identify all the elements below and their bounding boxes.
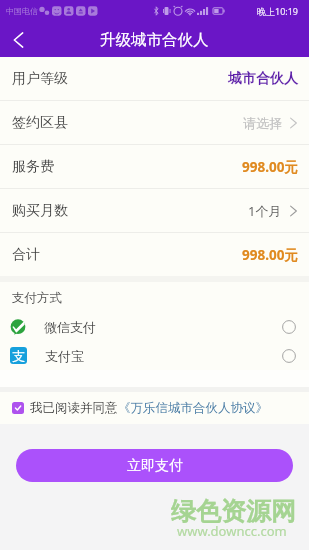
staticText: 升级城市合伙人	[100, 30, 209, 50]
button[interactable]: 服务费	[0, 145, 309, 188]
staticText: 服务费	[12, 158, 54, 176]
button[interactable]: 支	[0, 341, 309, 370]
staticText: 签约区县	[12, 114, 68, 132]
staticText: 我已阅读并同意	[30, 400, 118, 416]
staticText: 《万乐信城市合伙人协议》	[118, 400, 268, 416]
button[interactable]: Back	[0, 22, 36, 57]
button[interactable]: 用户等级	[0, 57, 309, 100]
staticText: 城市合伙人	[228, 70, 298, 88]
staticText: 支付方式	[12, 290, 62, 306]
staticText: 请选择	[243, 115, 282, 131]
button[interactable]: 立即支付	[16, 449, 293, 482]
staticText: 合计	[12, 246, 40, 264]
staticText: 支付宝	[45, 348, 84, 364]
button[interactable]: 我已阅读并同意	[0, 392, 309, 424]
button[interactable]: 购买月数	[0, 189, 309, 232]
staticText: 用户等级	[12, 70, 68, 88]
staticText: 1个月	[248, 202, 282, 220]
staticText: 微信支付	[44, 319, 96, 335]
button[interactable]: 签约区县	[0, 101, 309, 144]
button[interactable]: 微信支付	[0, 313, 309, 341]
staticText: 晚上10:19	[257, 5, 299, 17]
staticText: 立即支付	[127, 457, 183, 475]
staticText: 中国电信	[6, 6, 38, 16]
button[interactable]: 合计	[0, 233, 309, 276]
staticText: 支	[12, 348, 25, 364]
staticText: 998.00元	[242, 158, 298, 176]
staticText: 绿色资源网	[171, 496, 296, 527]
staticText: www.downcc.com	[177, 522, 287, 540]
staticText: 998.00元	[242, 246, 298, 264]
staticText: 购买月数	[12, 202, 68, 220]
